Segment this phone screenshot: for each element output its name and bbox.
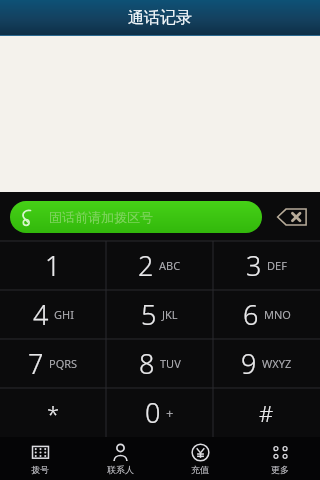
staticText: 9 — [241, 345, 257, 382]
staticText: 8 — [139, 345, 155, 382]
staticText: ABC — [159, 258, 181, 273]
button[interactable]: 更多 — [240, 437, 320, 480]
staticText: 1 — [45, 247, 61, 284]
staticText: 更多 — [271, 464, 289, 475]
button[interactable]: 4 — [0, 290, 106, 339]
staticText: 6 — [243, 296, 259, 333]
staticText: GHI — [54, 307, 74, 322]
staticText: 联系人 — [107, 464, 134, 475]
button[interactable]: 3 — [213, 241, 320, 290]
staticText: 0 — [145, 394, 161, 431]
button[interactable]: 2 — [106, 241, 213, 290]
staticText: 3 — [246, 247, 262, 284]
button[interactable]: Backspace — [274, 200, 310, 234]
button[interactable]: 6 — [213, 290, 320, 339]
staticText: 充值 — [191, 464, 209, 475]
button[interactable]: 8 — [106, 339, 213, 388]
staticText: * — [47, 398, 60, 428]
staticText: WXYZ — [262, 356, 292, 371]
staticText: 固话前请加拨区号 — [49, 209, 153, 225]
staticText: JKL — [162, 307, 178, 322]
button[interactable]: 7 — [0, 339, 106, 388]
button[interactable]: * — [0, 388, 106, 437]
button[interactable]: # — [213, 388, 320, 437]
button[interactable]: 5 — [106, 290, 213, 339]
button[interactable]: 充值 — [160, 437, 240, 480]
staticText: 拨号 — [31, 464, 49, 475]
button[interactable]: 0 — [106, 388, 213, 437]
staticText: 2 — [138, 247, 154, 284]
button[interactable]: 联系人 — [80, 437, 160, 480]
staticText: 5 — [141, 296, 157, 333]
staticText: PQRS — [49, 356, 78, 371]
staticText: DEF — [267, 258, 287, 273]
button[interactable]: 1 — [0, 241, 106, 290]
staticText: MNO — [264, 307, 291, 322]
staticText: 通话记录 — [128, 8, 192, 28]
staticText: # — [259, 398, 274, 428]
staticText: 7 — [28, 345, 44, 382]
button[interactable]: 9 — [213, 339, 320, 388]
staticText: 4 — [33, 296, 49, 333]
staticText: + — [166, 404, 174, 422]
button[interactable]: 固话前请加拨区号 — [10, 201, 262, 233]
staticText: TUV — [160, 356, 181, 371]
button[interactable]: 拨号 — [0, 437, 80, 480]
